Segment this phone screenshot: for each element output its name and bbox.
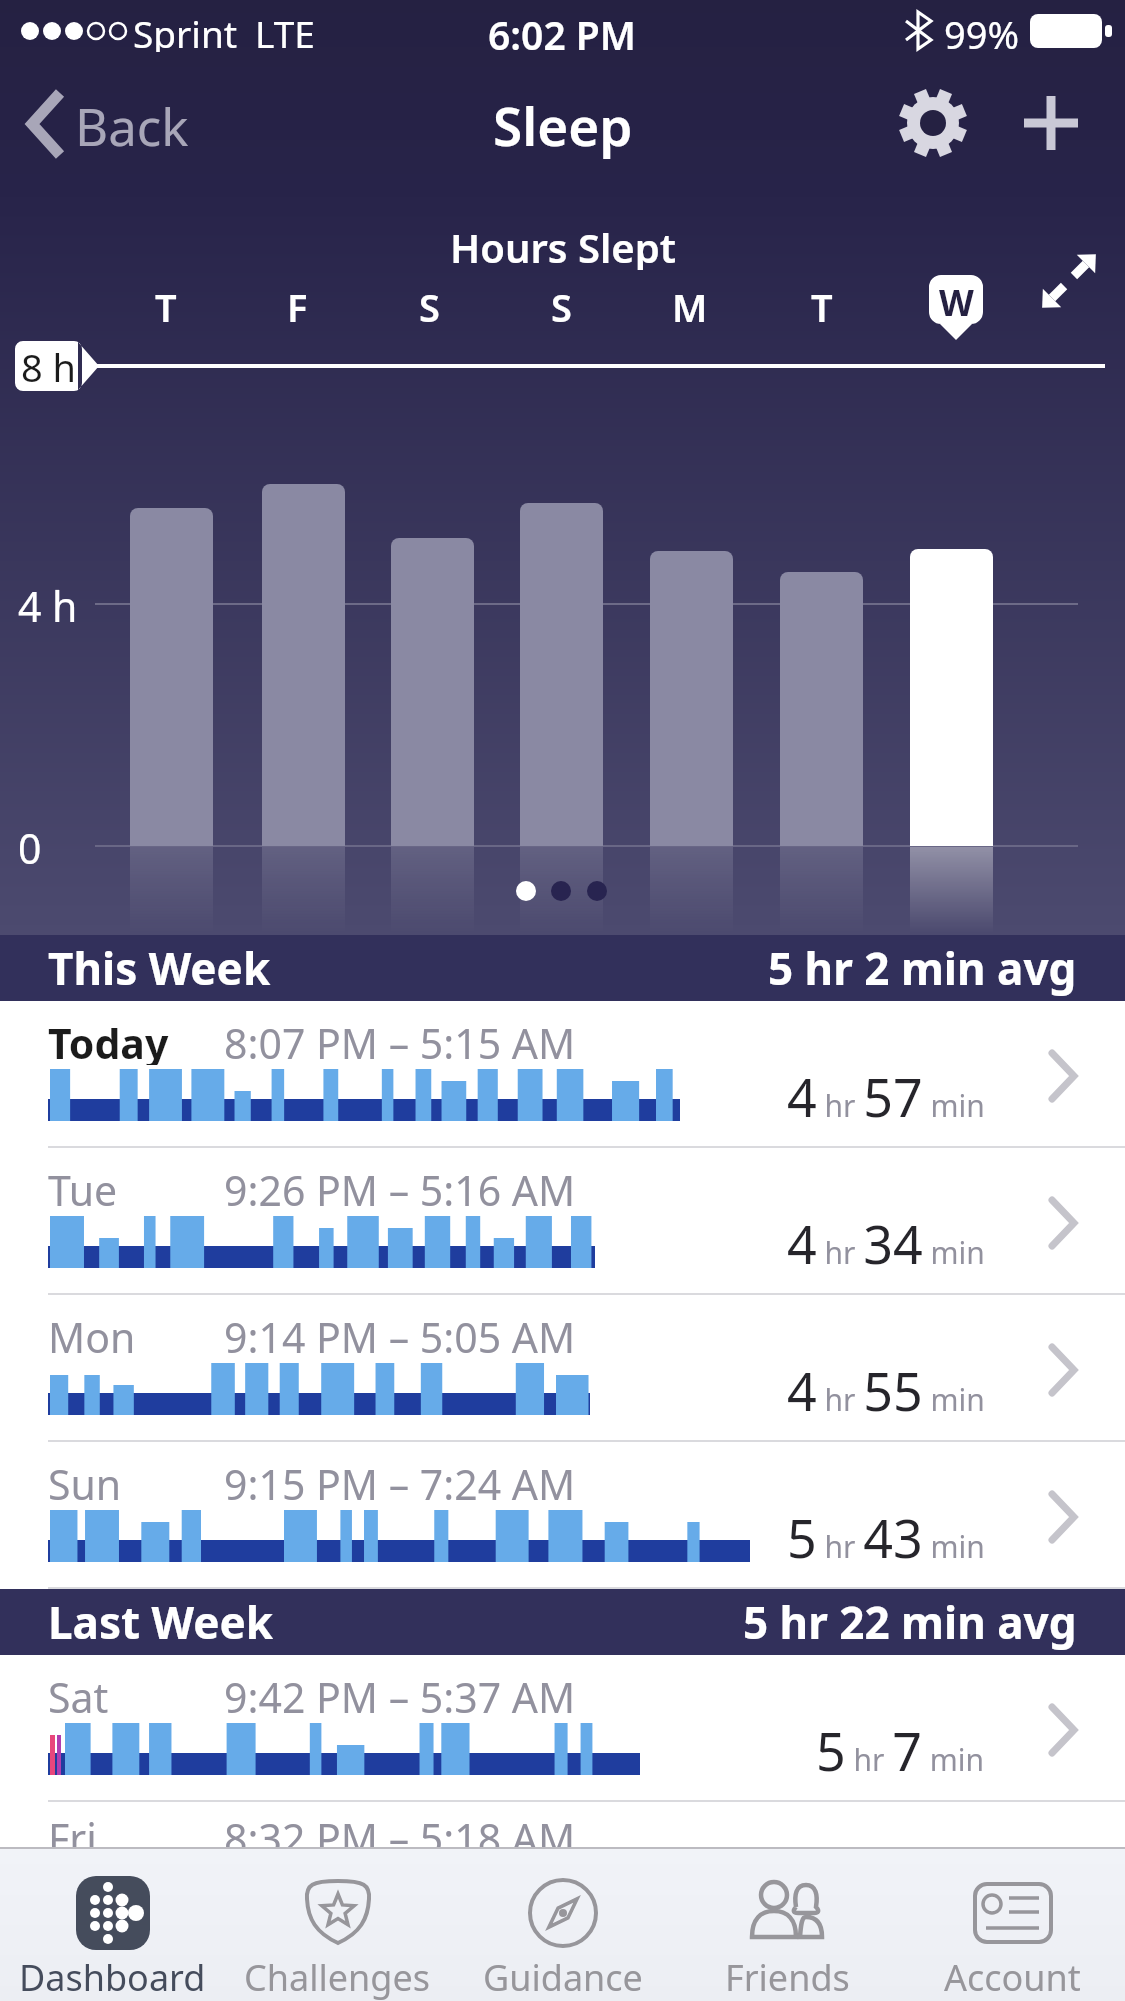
button[interactable]: Mon [0,1295,1125,1442]
staticText: 4 hr 57 min [787,1061,985,1131]
staticText: 4 hr 34 min [787,1208,985,1278]
staticText: Fri [48,1810,97,1860]
staticText: 9:14 PM – 5:05 AM [224,1309,576,1359]
staticText: Tue [48,1162,118,1212]
staticText: 8:32 PM – 5:18 AM [224,1810,576,1860]
button[interactable]: Friends [675,1849,900,2001]
button[interactable]: Challenges [225,1849,450,2001]
staticText: 4 h [18,578,78,628]
staticText: 5 hr 22 min avg [743,1592,1077,1652]
button[interactable]: Today [0,1001,1125,1148]
staticText: W [939,278,974,327]
staticText: 9:15 PM – 7:24 AM [224,1456,576,1506]
staticText: T [811,281,833,331]
button[interactable] [1005,80,1095,166]
staticText: 5 hr 43 min [787,1502,985,1572]
staticText: Challenges [244,1953,431,2001]
staticText: Sun [48,1456,122,1506]
staticText: 8:07 PM – 5:15 AM [224,1015,576,1065]
staticText: S [551,281,572,331]
staticText: Back [75,91,189,160]
button[interactable]: Account [900,1849,1125,2001]
staticText: LTE [255,8,315,52]
button[interactable]: Guidance [450,1849,675,2001]
staticText: Mon [48,1309,136,1359]
staticText: 0 [18,820,42,870]
staticText: Hours Slept [450,220,676,270]
button[interactable] [1035,245,1107,317]
button[interactable]: Back [10,85,230,165]
staticText: M [672,281,708,331]
staticText: Last Week [48,1592,274,1652]
staticText: Account [944,1953,1081,2001]
button[interactable] [890,80,976,166]
button[interactable]: Sat [0,1655,1125,1802]
button[interactable]: Sun [0,1442,1125,1589]
button[interactable]: Tue [0,1148,1125,1295]
staticText: 9:42 PM – 5:37 AM [224,1669,576,1719]
staticText: Dashboard [19,1953,206,2001]
staticText: F [287,281,308,331]
staticText: 99% [944,8,1020,52]
staticText: Guidance [483,1953,643,2001]
staticText: S [419,281,440,331]
staticText: 9:26 PM – 5:16 AM [224,1162,576,1212]
staticText: 5 hr 7 min [816,1715,985,1785]
staticText: 5 hr 2 min avg [768,938,1077,998]
staticText: T [155,281,177,331]
staticText: Sleep [493,89,633,161]
staticText: Sat [48,1669,109,1719]
staticText: Sprint [133,8,238,52]
staticText: Today [48,1015,169,1065]
staticText: Friends [725,1953,850,2001]
staticText: 8 h [21,341,77,391]
staticText: 4 hr 55 min [787,1355,985,1425]
button[interactable]: Dashboard [0,1849,225,2001]
staticText: 6:02 PM [488,8,637,54]
staticText: This Week [48,938,271,998]
